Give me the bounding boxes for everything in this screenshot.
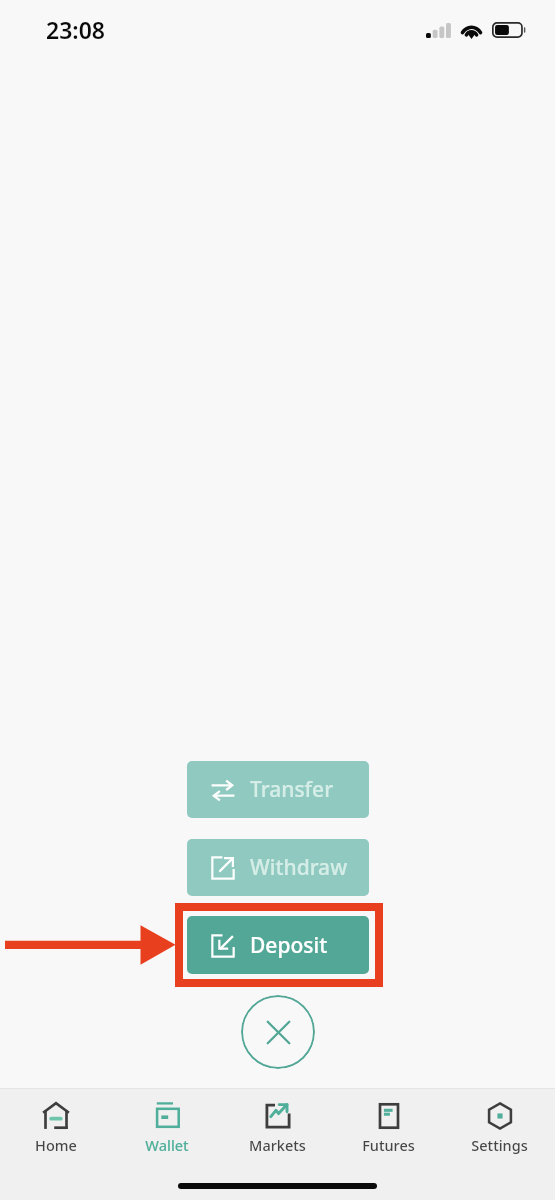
button[interactable]: Settings (444, 1100, 555, 1155)
staticText: Wallet (145, 1135, 189, 1155)
button[interactable]: Home (0, 1100, 111, 1155)
staticText: Futures (362, 1135, 415, 1155)
button[interactable]: Close (241, 995, 315, 1069)
button[interactable]: Futures (333, 1100, 444, 1155)
staticText: Withdraw (250, 853, 348, 882)
staticText: Home (35, 1135, 77, 1155)
staticText: Markets (249, 1135, 306, 1155)
button[interactable]: Markets (222, 1100, 333, 1155)
button[interactable]: Withdraw (187, 839, 369, 896)
staticText: Settings (471, 1135, 528, 1155)
staticText: Deposit (250, 931, 328, 960)
staticText: 23:08 (46, 14, 105, 45)
button[interactable]: Transfer (187, 761, 369, 818)
staticText: Transfer (250, 775, 334, 804)
button[interactable]: Deposit (187, 916, 369, 974)
button[interactable]: Wallet (111, 1100, 222, 1155)
